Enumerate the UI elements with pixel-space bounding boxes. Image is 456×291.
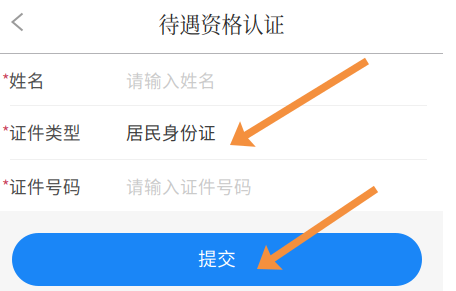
staticText: * — [2, 120, 9, 143]
staticText: * — [2, 68, 9, 91]
staticText: 居民身份证 — [126, 119, 216, 144]
staticText: 证件类型 — [9, 119, 81, 144]
staticText: 证件号码 — [9, 173, 81, 198]
button[interactable]: Back — [0, 0, 35, 53]
staticText: 待遇资格认证 — [158, 8, 284, 39]
staticText: 请输入姓名 — [126, 67, 216, 92]
staticText: * — [2, 174, 9, 197]
button[interactable]: 提交 — [12, 233, 422, 286]
staticText: 请输入证件号码 — [126, 173, 252, 198]
staticText: 姓名 — [9, 67, 45, 92]
staticText: 提交 — [198, 244, 236, 271]
